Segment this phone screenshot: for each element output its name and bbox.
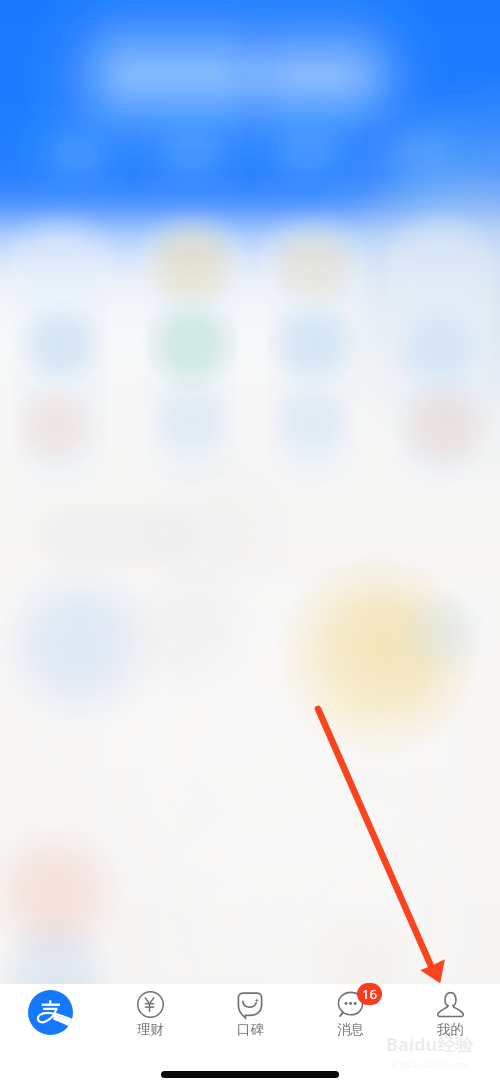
button[interactable]: 支付宝首页 [0,984,100,1035]
button[interactable]: 口碑 [200,984,300,1038]
other: 理财 [136,991,165,1018]
staticText: 16 [362,985,377,1003]
staticText: Baidu经验 [386,1032,474,1057]
staticText: 口碑 [237,1021,264,1038]
button[interactable]: 我的 [400,984,500,1038]
staticText: 理财 [137,1021,164,1038]
button[interactable]: 消息 [300,984,400,1038]
other: 消息 [337,991,364,1018]
button[interactable]: 理财 [100,984,200,1038]
other: 我的 [436,991,465,1018]
staticText: 我的 [437,1021,464,1038]
staticText: 消息 [337,1021,364,1038]
other: 口碑 [236,992,264,1018]
